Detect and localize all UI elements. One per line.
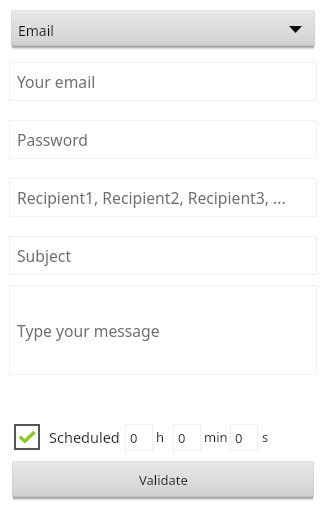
button[interactable]: 0 <box>125 424 153 451</box>
button[interactable]: Validate <box>12 461 314 501</box>
staticText: Subject <box>17 245 72 266</box>
button[interactable]: Email <box>11 10 315 50</box>
button[interactable]: Scheduled <box>14 424 40 450</box>
button[interactable]: Subject <box>9 236 317 275</box>
staticText: 0 <box>235 429 243 447</box>
button[interactable]: Recipient1, Recipient2, Recipient3, ... <box>9 178 317 217</box>
staticText: min <box>204 428 228 446</box>
staticText: Type your message <box>17 320 160 341</box>
staticText: s <box>262 428 269 446</box>
button[interactable]: 0 <box>173 424 201 451</box>
staticText: Password <box>17 129 88 150</box>
staticText: Your email <box>17 71 96 92</box>
staticText: Recipient1, Recipient2, Recipient3, ... <box>17 187 286 208</box>
button[interactable]: Password <box>9 120 317 159</box>
staticText: Validate <box>139 471 188 489</box>
button[interactable]: Your email <box>9 62 317 101</box>
button[interactable]: Type your message <box>9 285 317 375</box>
staticText: Email <box>18 21 54 40</box>
staticText: h <box>156 428 165 446</box>
button[interactable]: 0 <box>230 424 258 451</box>
staticText: 0 <box>178 429 186 447</box>
staticText: Scheduled <box>49 427 120 447</box>
staticText: 0 <box>130 429 138 447</box>
